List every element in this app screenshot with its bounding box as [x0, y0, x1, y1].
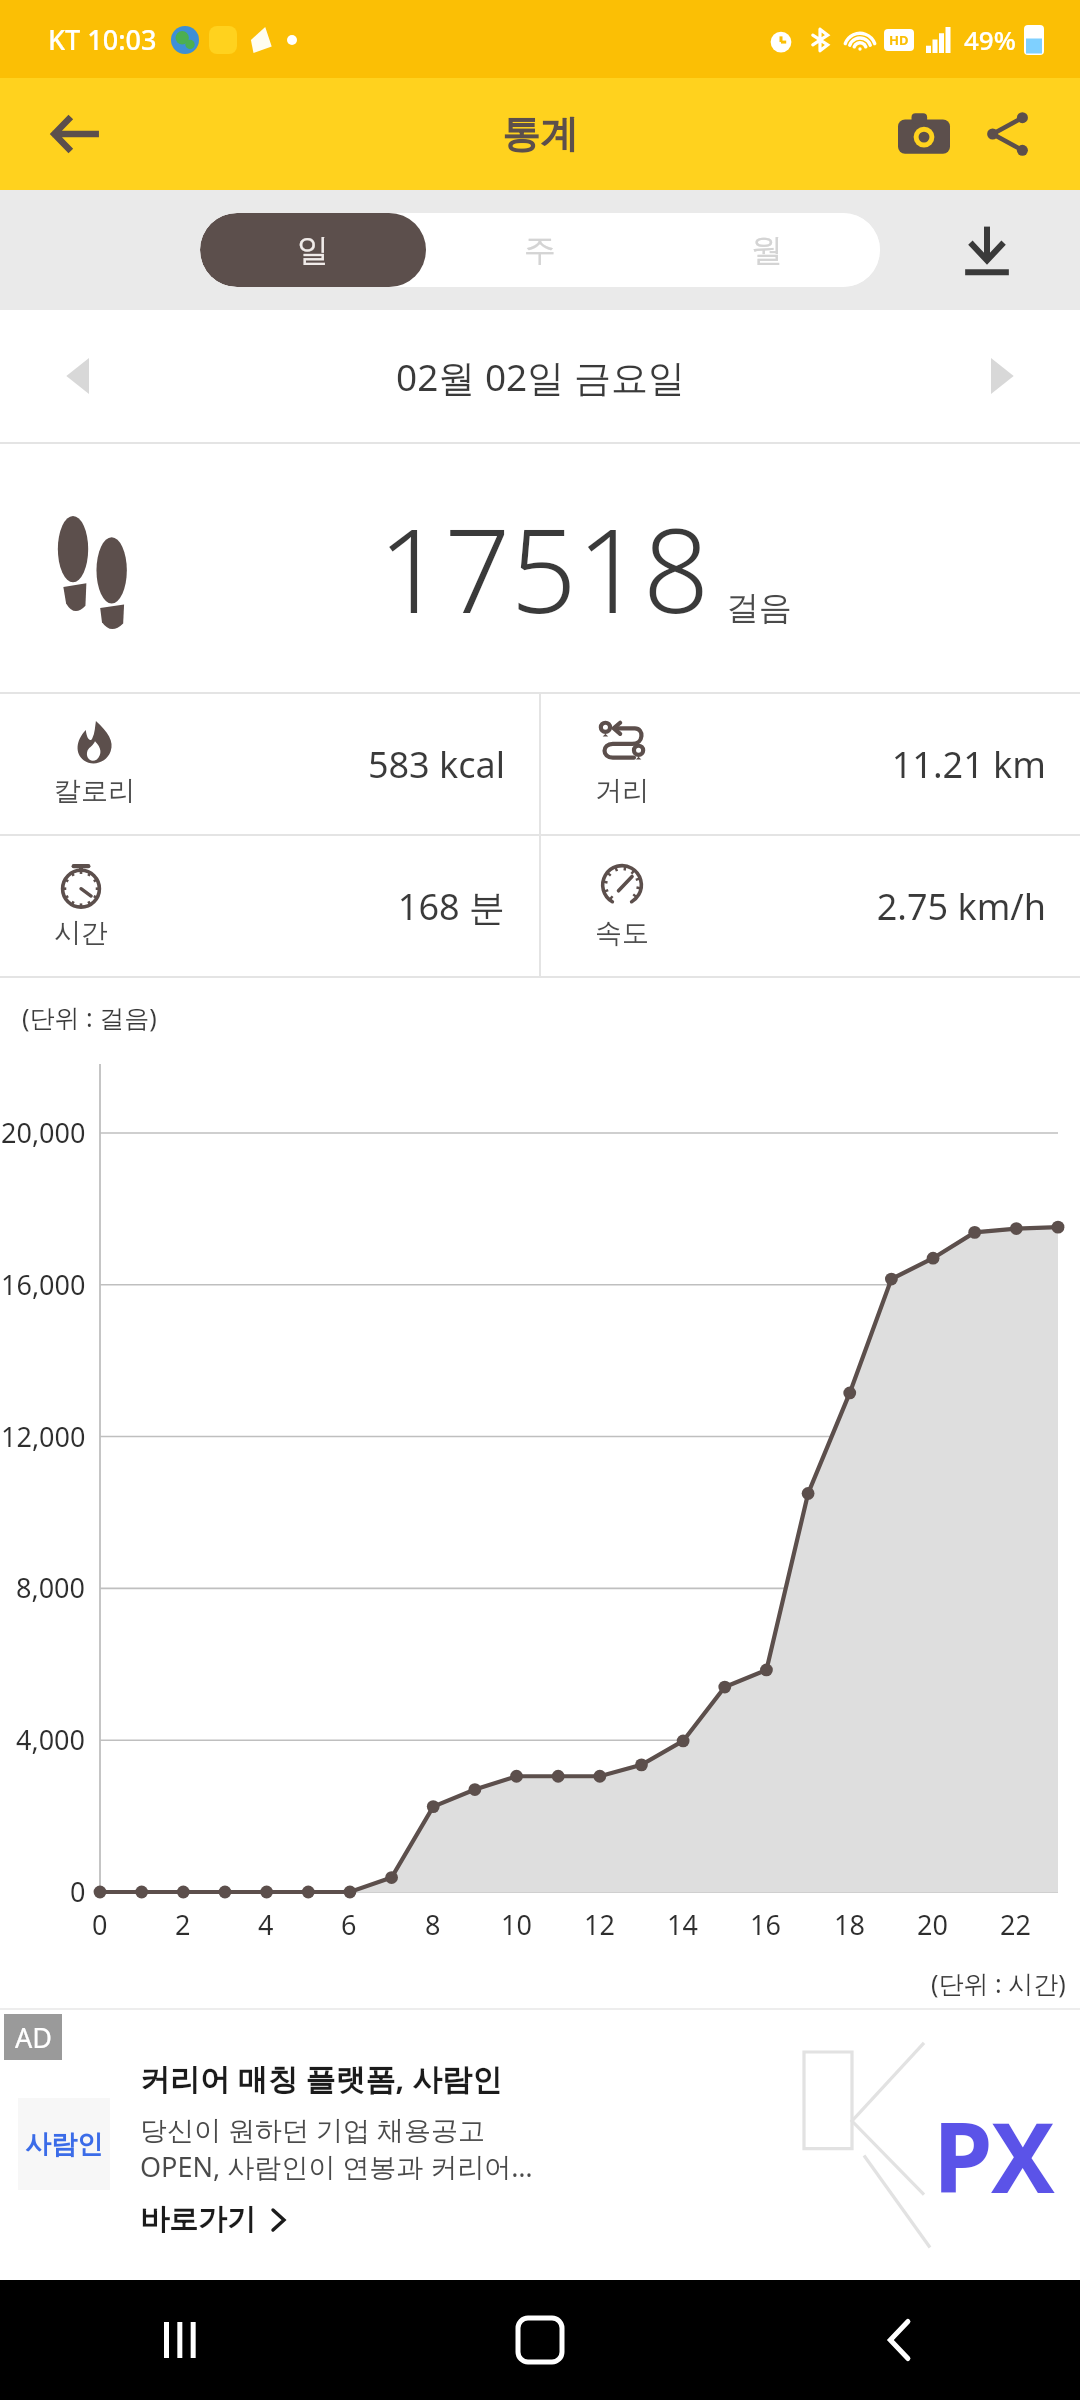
staticText: 49%: [964, 22, 1016, 57]
staticText: 속도: [595, 916, 649, 950]
staticText: 시간: [54, 916, 108, 950]
staticText: 4,000: [16, 1721, 86, 1758]
staticText: 거리: [595, 774, 649, 808]
staticText: OPEN, 사람인이 연봉과 커리어…: [140, 2148, 533, 2185]
button[interactable]: Download: [944, 207, 1030, 293]
staticText: 주: [524, 230, 556, 270]
staticText: KT 10:03: [48, 21, 157, 58]
button[interactable]: 속도: [541, 836, 1080, 976]
staticText: PX: [933, 2090, 1056, 2221]
staticText: 12,000: [1, 1418, 86, 1455]
staticText: (단위 : 걸음): [22, 1000, 157, 1034]
staticText: 16: [750, 1906, 781, 1943]
staticText: 18: [834, 1906, 865, 1943]
button[interactable]: Next day: [960, 336, 1040, 416]
button[interactable]: Previous day: [40, 336, 120, 416]
button[interactable]: PX: [0, 2008, 1080, 2280]
staticText: 16,000: [1, 1266, 86, 1303]
staticText: AD: [15, 2019, 52, 2056]
button[interactable]: Camera: [882, 92, 966, 176]
staticText: 2.75 km/h: [671, 882, 1046, 931]
staticText: HD: [889, 31, 909, 49]
button[interactable]: 거리: [541, 694, 1080, 834]
staticText: 02월 02일 금요일: [396, 351, 685, 402]
button[interactable]: 일: [200, 213, 426, 287]
staticText: (단위 : 시간): [931, 1966, 1066, 2000]
staticText: 11.21 km: [671, 740, 1046, 789]
staticText: 22: [1000, 1906, 1031, 1943]
staticText: 6: [341, 1906, 357, 1943]
button[interactable]: 칼로리: [0, 694, 539, 834]
staticText: 일: [297, 230, 329, 270]
staticText: 0: [92, 1906, 108, 1943]
staticText: 17518: [378, 489, 710, 647]
staticText: 칼로리: [54, 774, 135, 808]
staticText: 168 분: [130, 882, 505, 931]
staticText: 당신이 원하던 기업 채용공고: [140, 2111, 486, 2148]
button[interactable]: 주: [426, 213, 653, 287]
staticText: 바로가기: [140, 2201, 256, 2238]
button[interactable]: 월: [653, 213, 880, 287]
button[interactable]: Back: [720, 2280, 1080, 2400]
staticText: 걸음: [726, 587, 792, 629]
staticText: 통계: [502, 110, 578, 158]
button[interactable]: Home: [360, 2280, 720, 2400]
staticText: 사람인: [25, 2128, 103, 2161]
button[interactable]: Share: [966, 92, 1050, 176]
staticText: 8,000: [16, 1569, 86, 1606]
staticText: 8: [425, 1906, 441, 1943]
staticText: 커리어 매칭 플랫폼, 사람인: [140, 2058, 502, 2099]
staticText: 2: [175, 1906, 191, 1943]
staticText: 14: [667, 1906, 698, 1943]
staticText: 4: [258, 1906, 274, 1943]
staticText: 10: [501, 1906, 532, 1943]
staticText: 20: [917, 1906, 948, 1943]
staticText: 583 kcal: [130, 740, 505, 789]
button[interactable]: 시간: [0, 836, 539, 976]
staticText: 월: [751, 230, 783, 270]
staticText: 20,000: [1, 1114, 86, 1151]
button[interactable]: Back: [36, 95, 114, 173]
button[interactable]: Recents: [0, 2280, 360, 2400]
staticText: 12: [584, 1906, 615, 1943]
staticText: 0: [70, 1873, 86, 1910]
